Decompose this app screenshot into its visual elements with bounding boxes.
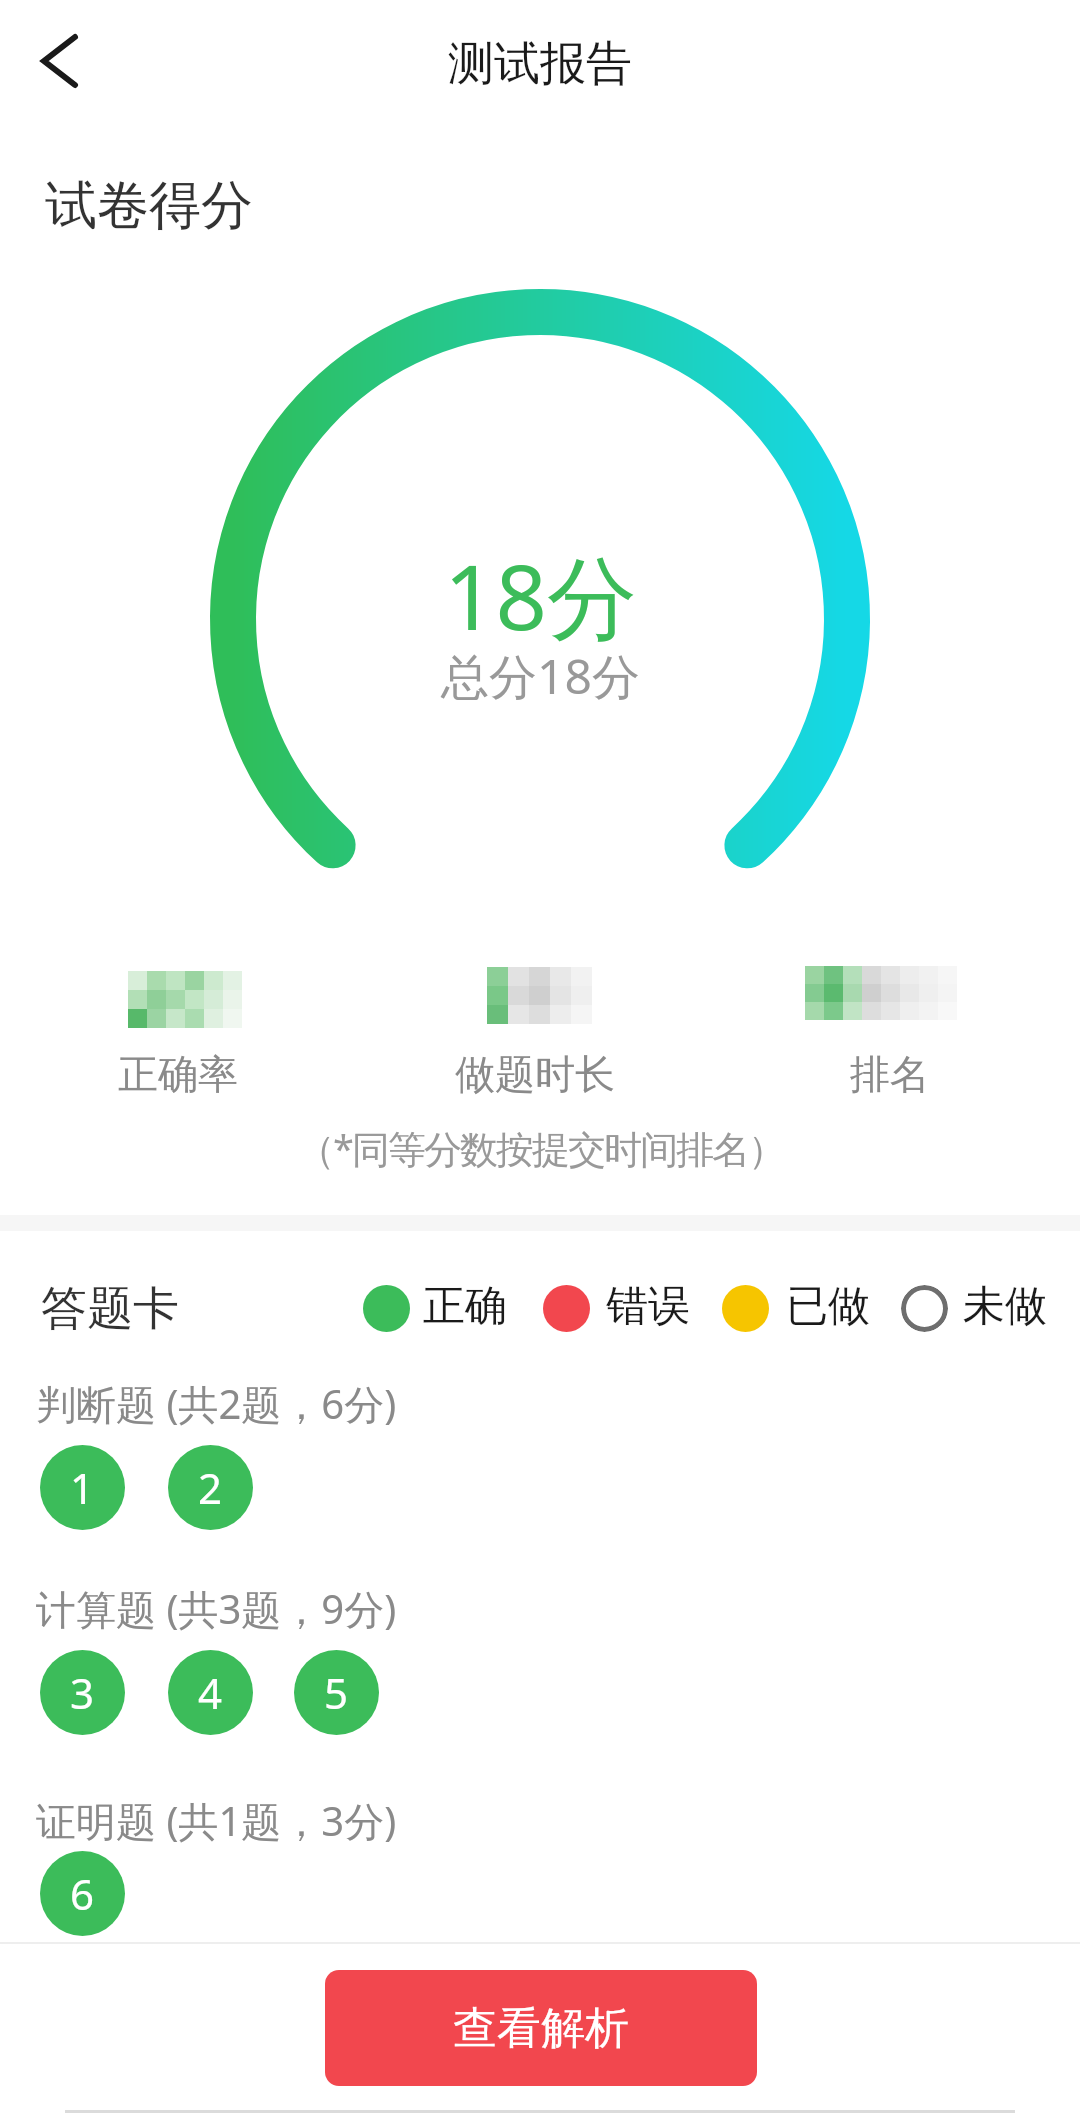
staticText: 做题时长 — [455, 1049, 615, 1099]
staticText: 正确 — [423, 1280, 507, 1333]
staticText: 判断题 (共2题，6分) — [36, 1376, 397, 1431]
staticText: 18分 — [444, 534, 637, 657]
staticText: 答题卡 — [41, 1280, 179, 1338]
staticText: 5 — [324, 1664, 349, 1721]
button[interactable]: 1 — [40, 1445, 125, 1530]
button[interactable]: 5 — [294, 1650, 379, 1735]
staticText: 未做 — [963, 1280, 1047, 1333]
staticText: 1 — [70, 1459, 95, 1516]
staticText: 测试报告 — [448, 35, 632, 93]
staticText: 正确率 — [118, 1049, 238, 1099]
staticText: 计算题 (共3题，9分) — [36, 1581, 397, 1636]
button[interactable]: 4 — [168, 1650, 253, 1735]
staticText: 排名 — [850, 1049, 930, 1099]
button[interactable]: 6 — [40, 1851, 125, 1936]
staticText: 3 — [70, 1664, 95, 1721]
staticText: 6 — [70, 1865, 95, 1922]
staticText: 查看解析 — [453, 2001, 629, 2056]
button[interactable] — [25, 20, 95, 100]
staticText: 证明题 (共1题，3分) — [36, 1793, 397, 1848]
staticText: 4 — [198, 1664, 223, 1721]
staticText: 已做 — [786, 1280, 870, 1333]
staticText: 2 — [198, 1459, 223, 1516]
staticText: 试卷得分 — [45, 173, 253, 239]
button[interactable]: 查看解析 — [325, 1970, 757, 2086]
staticText: （*同等分数按提交时间排名） — [297, 1122, 784, 1174]
staticText: 错误 — [606, 1280, 690, 1333]
button[interactable]: 3 — [40, 1650, 125, 1735]
button[interactable]: 2 — [168, 1445, 253, 1530]
staticText: 总分18分 — [441, 643, 640, 709]
